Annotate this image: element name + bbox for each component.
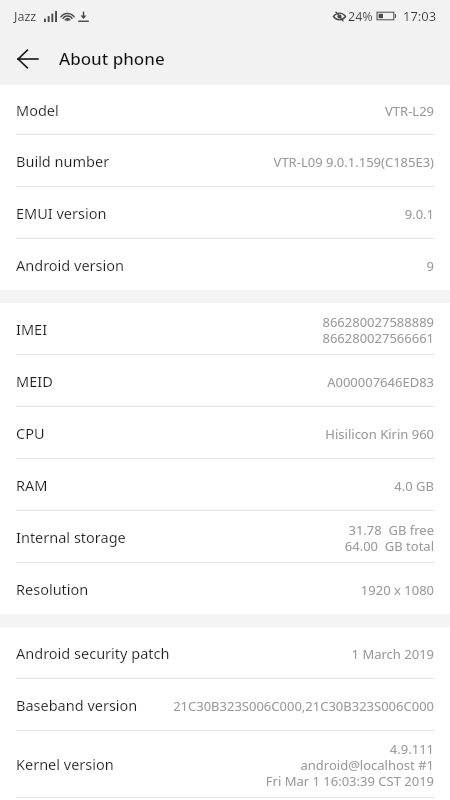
staticText: Resolution (16, 579, 89, 599)
staticText: 64.00 GB total (344, 537, 434, 553)
staticText: MEID (16, 371, 53, 391)
staticText: VTR-L29 (385, 102, 434, 118)
staticText: 4.0 GB (394, 477, 434, 493)
staticText: 9.0.1 (404, 205, 434, 221)
button[interactable]: CPU (0, 407, 450, 458)
staticText: Internal storage (16, 527, 126, 547)
staticText: 866280027566661 (322, 329, 434, 345)
staticText: CPU (16, 423, 45, 443)
button[interactable]: RAM (0, 459, 450, 510)
staticText: 21C30B323S006C000,21C30B323S006C000 (173, 697, 434, 713)
staticText: 17:03 (403, 7, 437, 25)
button[interactable]: Internal storage (0, 511, 450, 562)
staticText: VTR-L09 9.0.1.159(C185E3) (273, 153, 434, 169)
staticText: Android version (16, 255, 124, 275)
button[interactable]: MEID (0, 355, 450, 406)
staticText: Android security patch (16, 643, 170, 663)
button[interactable]: Back (6, 37, 50, 81)
staticText: A000007646ED83 (327, 373, 434, 389)
staticText: IMEI (16, 319, 48, 339)
staticText: Jazz (14, 8, 37, 25)
staticText: 24% (348, 8, 373, 25)
staticText: 9 (426, 257, 434, 273)
staticText: 1 March 2019 (351, 645, 434, 661)
staticText: 31.78 GB free (348, 521, 434, 537)
staticText: EMUI version (16, 203, 107, 223)
staticText: About phone (59, 47, 165, 70)
staticText: Kernel version (16, 754, 114, 774)
staticText: Build number (16, 151, 110, 171)
staticText: Fri Mar 1 16:03:39 CST 2019 (265, 772, 434, 788)
button[interactable]: Kernel version (0, 731, 450, 797)
staticText: 1920 x 1080 (360, 581, 434, 597)
staticText: Model (16, 100, 59, 120)
staticText: RAM (16, 475, 48, 495)
staticText: Hisilicon Kirin 960 (325, 425, 434, 441)
button[interactable]: IMEI (0, 303, 450, 354)
staticText: 4.9.111 (389, 740, 434, 756)
button[interactable]: Baseband version (0, 679, 450, 730)
button[interactable]: Android security patch (0, 627, 450, 678)
button[interactable]: Android version (0, 239, 450, 290)
staticText: android@localhost #1 (300, 756, 434, 772)
button[interactable]: Resolution (0, 563, 450, 614)
button[interactable]: Model (0, 85, 450, 134)
staticText: 866280027588889 (322, 313, 434, 329)
button[interactable]: Build number (0, 135, 450, 186)
staticText: Baseband version (16, 695, 138, 715)
button[interactable]: EMUI version (0, 187, 450, 238)
